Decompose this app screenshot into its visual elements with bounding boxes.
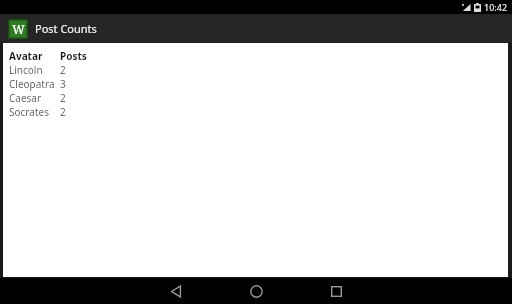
button[interactable]: Recent apps — [321, 278, 351, 304]
staticText: Posts — [60, 49, 87, 63]
button[interactable]: Back — [161, 278, 191, 304]
staticText: Caesar — [9, 91, 60, 105]
staticText: Post Counts — [35, 21, 97, 36]
button[interactable]: Cleopatra — [9, 77, 508, 91]
staticText: 3 — [60, 77, 66, 91]
button[interactable]: Lincoln — [9, 63, 508, 77]
button[interactable]: Socrates — [9, 105, 508, 119]
staticText: Cleopatra — [9, 77, 60, 91]
staticText: 2 — [60, 91, 66, 105]
other: Battery — [474, 3, 481, 12]
staticText: Lincoln — [9, 63, 60, 77]
button[interactable]: Home — [241, 278, 271, 304]
staticText: 2 — [60, 63, 66, 77]
staticText: Socrates — [9, 105, 60, 119]
staticText: 10:42 — [484, 1, 508, 13]
staticText: 2 — [60, 105, 66, 119]
staticText: Avatar — [9, 49, 60, 63]
button[interactable]: W — [0, 14, 512, 43]
staticText: W — [12, 21, 25, 37]
button[interactable]: Caesar — [9, 91, 508, 105]
other: Signal strength — [462, 3, 471, 12]
